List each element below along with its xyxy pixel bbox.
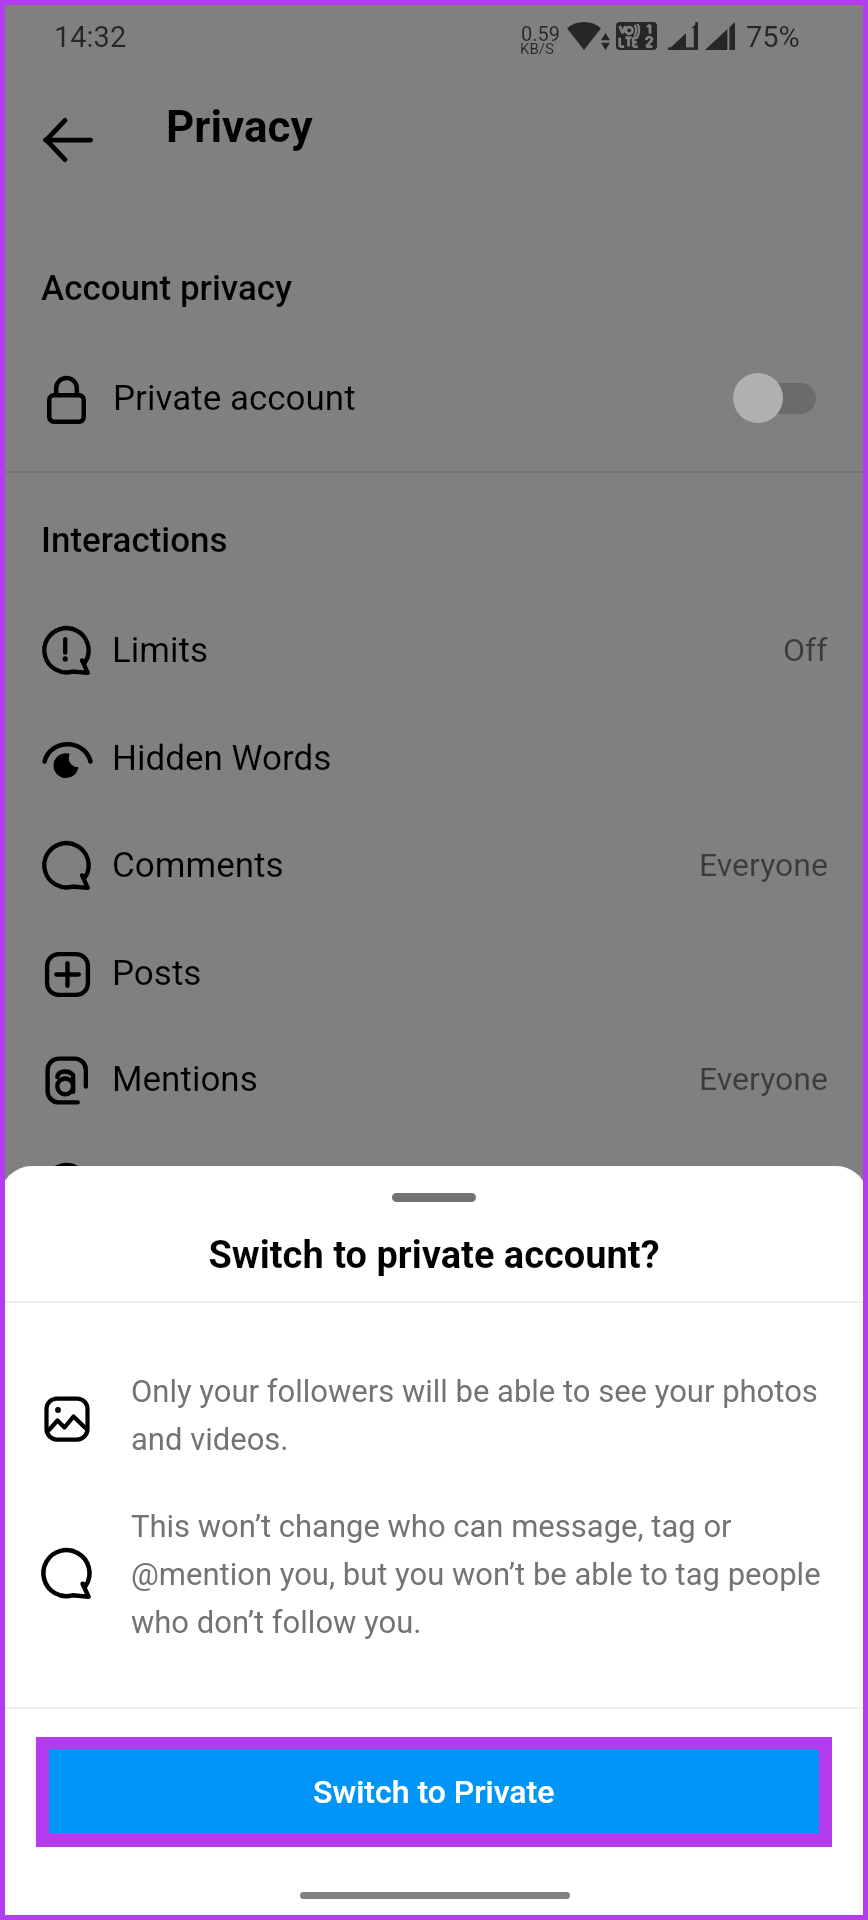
button[interactable]: Posts — [42, 920, 828, 1026]
staticText: Limits — [112, 630, 209, 671]
staticText: Private account — [113, 378, 356, 419]
staticText: Mentions — [112, 1059, 258, 1100]
staticText: Comments — [112, 845, 284, 886]
staticText: 75% — [746, 20, 800, 54]
staticText: Privacy — [166, 101, 313, 153]
staticText: Account privacy — [41, 268, 293, 309]
staticText: Posts — [112, 953, 202, 994]
staticText: Switch to private account? — [0, 1233, 868, 1278]
button[interactable]: Private account — [47, 343, 828, 453]
button[interactable]: Mentions — [42, 1026, 828, 1132]
button[interactable]: Limits — [42, 597, 828, 703]
staticText: Switch to Private — [313, 1773, 555, 1811]
staticText: Hidden Words — [112, 738, 332, 779]
staticText: Off — [783, 631, 828, 669]
button[interactable] — [42, 1134, 828, 1240]
staticText: Everyone — [699, 1060, 828, 1098]
staticText: KB/S — [520, 40, 554, 58]
button[interactable]: Back — [32, 104, 104, 176]
button[interactable]: Hidden Words — [42, 705, 828, 811]
button[interactable]: Switch to Private — [49, 1750, 819, 1834]
staticText: Only your followers will be able to see … — [131, 1373, 841, 1458]
staticText: 14:32 — [54, 20, 127, 54]
staticText: This won’t change who can message, tag o… — [131, 1508, 841, 1641]
staticText: 0.59 — [521, 22, 560, 45]
staticText: Everyone — [699, 846, 828, 884]
staticText: Interactions — [41, 520, 228, 561]
button[interactable]: Comments — [42, 812, 828, 918]
